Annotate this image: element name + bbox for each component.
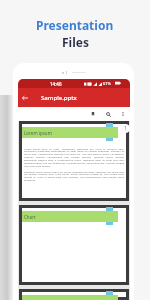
staticText: Presentation — [36, 17, 114, 33]
staticText: Lorem ipsum dolor sit amet, consectetur … — [24, 147, 124, 168]
button[interactable]: More options — [116, 107, 130, 121]
staticText: Files — [62, 34, 89, 50]
staticText: Sample.pptx — [41, 94, 77, 102]
staticText: Chart — [24, 214, 36, 220]
button[interactable]: Bookmark — [86, 107, 100, 121]
staticText: Lorem ipsum — [24, 130, 52, 136]
staticText: Maecenas luctus cursus viverra ex cursus… — [24, 170, 124, 182]
staticText: 1 — [124, 125, 127, 132]
button[interactable]: Search — [101, 107, 115, 121]
staticText: 61% — [103, 81, 111, 86]
button[interactable]: Back — [18, 91, 32, 105]
staticText: 14:46 — [50, 81, 62, 87]
